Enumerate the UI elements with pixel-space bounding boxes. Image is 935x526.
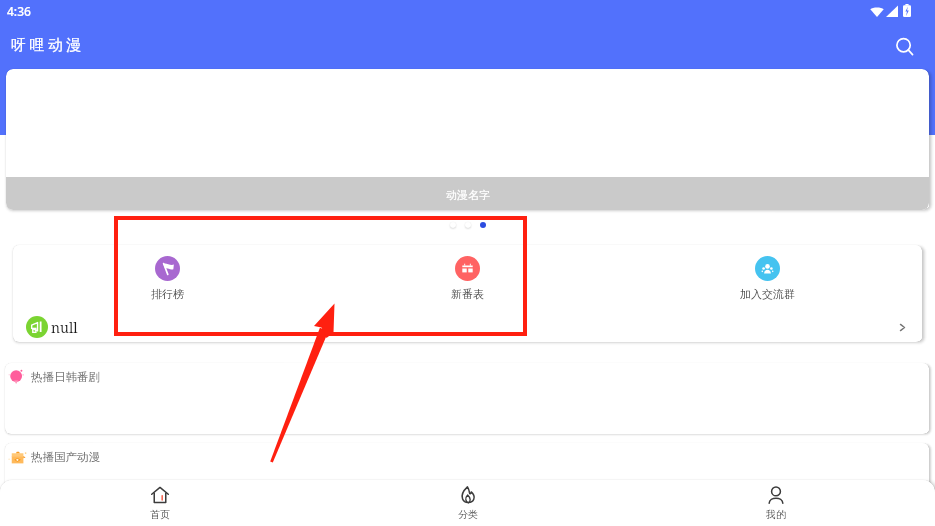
staticText: 呀哩动漫: [9, 36, 83, 55]
staticText: null: [51, 318, 78, 337]
button[interactable]: 热播日韩番剧: [5, 363, 929, 434]
staticText: 动漫名字: [446, 188, 490, 202]
staticText: 分类: [458, 508, 478, 521]
staticText: 热播日韩番剧: [31, 370, 100, 384]
button[interactable]: 热播国产动漫: [5, 443, 929, 523]
staticText: 4:36: [7, 3, 31, 19]
button[interactable]: 我的: [622, 482, 930, 525]
button[interactable]: 分类: [314, 482, 622, 525]
staticText: 新番表: [451, 287, 484, 301]
button[interactable]: 加入交流群: [617, 256, 917, 301]
button[interactable]: 动漫名字: [6, 69, 929, 210]
button[interactable]: 首页: [5, 482, 314, 525]
staticText: 排行榜: [151, 287, 184, 301]
button[interactable]: null: [13, 312, 922, 342]
button[interactable]: 新番表: [317, 256, 617, 301]
staticText: 加入交流群: [740, 287, 795, 301]
staticText: 首页: [150, 508, 170, 521]
staticText: 热播国产动漫: [31, 450, 100, 464]
button[interactable]: Search: [888, 30, 922, 64]
staticText: 我的: [766, 508, 786, 521]
button[interactable]: 排行榜: [18, 256, 317, 301]
